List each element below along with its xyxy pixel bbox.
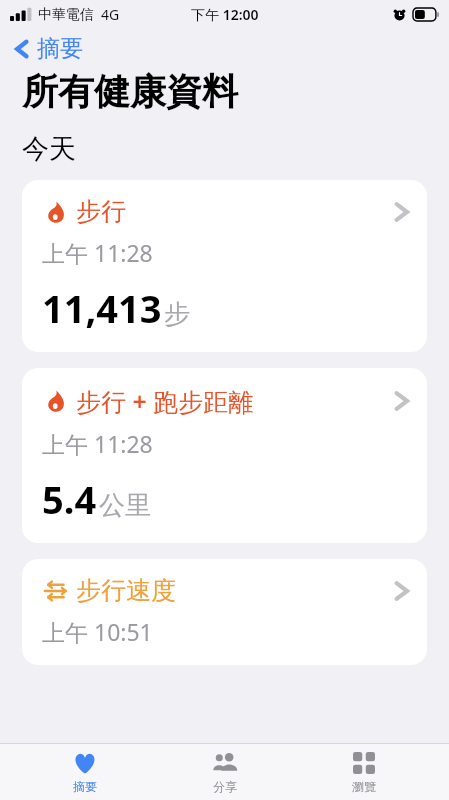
staticText: 今天 — [22, 132, 76, 166]
staticText: 步行 + 跑步距離 — [76, 384, 254, 418]
staticText: 步 — [164, 298, 190, 331]
staticText: 公里 — [99, 489, 151, 522]
other: 摘要 — [73, 751, 97, 775]
staticText: 上午 11:28 — [42, 428, 153, 459]
staticText: 中華電信 — [38, 6, 94, 24]
staticText: 5.4 — [42, 473, 97, 525]
button[interactable]: 分享 — [170, 746, 280, 798]
staticText: 摘要 — [37, 34, 83, 63]
staticText: 瀏覽 — [352, 779, 376, 794]
staticText: 所有健康資料 — [22, 69, 238, 114]
button[interactable]: 瀏覽 — [309, 746, 419, 798]
button[interactable]: 摘要 — [30, 746, 140, 798]
button[interactable]: 步行 + 跑步距離 — [22, 368, 427, 543]
staticText: 上午 10:51 — [42, 616, 153, 647]
staticText: 下午 12:00 — [191, 5, 259, 24]
staticText: 步行速度 — [76, 575, 176, 606]
button[interactable]: 摘要 — [12, 34, 83, 63]
button[interactable]: 步行速度 — [22, 559, 427, 665]
staticText: 步行 — [76, 196, 126, 227]
staticText: 上午 11:28 — [42, 237, 153, 268]
staticText: 11,413 — [42, 282, 162, 334]
staticText: 摘要 — [73, 779, 97, 794]
other: 瀏覽 — [353, 752, 375, 774]
staticText: 分享 — [213, 779, 237, 794]
staticText: 4G — [101, 5, 120, 24]
button[interactable]: 步行 — [22, 180, 427, 352]
other: 分享 — [212, 750, 238, 776]
